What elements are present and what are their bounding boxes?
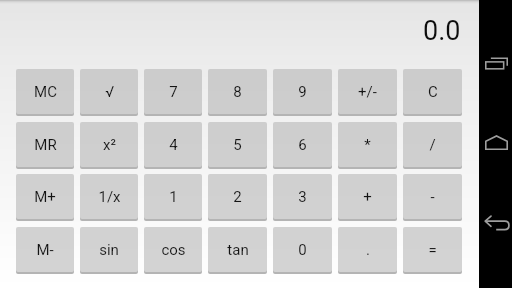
staticText: -: [430, 188, 435, 206]
staticText: 5: [233, 136, 242, 154]
button[interactable]: 8: [208, 69, 267, 114]
staticText: MR: [34, 136, 57, 154]
staticText: cos: [161, 241, 186, 259]
button[interactable]: *: [338, 122, 397, 167]
staticText: 9: [298, 83, 307, 101]
staticText: M+: [34, 188, 56, 206]
staticText: 0.0: [423, 15, 461, 47]
button[interactable]: 0: [273, 227, 332, 272]
staticText: 1: [169, 188, 178, 206]
button[interactable]: x²: [80, 122, 138, 167]
staticText: sin: [99, 241, 119, 259]
button[interactable]: +/-: [338, 69, 397, 114]
button[interactable]: 4: [144, 122, 202, 167]
button[interactable]: MC: [16, 69, 74, 114]
staticText: +: [363, 188, 372, 206]
staticText: C: [428, 83, 438, 101]
button[interactable]: +: [338, 174, 397, 219]
button[interactable]: √: [80, 69, 138, 114]
button[interactable]: =: [403, 227, 462, 272]
button[interactable]: C: [403, 69, 462, 114]
staticText: MC: [34, 83, 57, 101]
staticText: 6: [298, 136, 307, 154]
staticText: 0: [298, 241, 307, 259]
staticText: √: [105, 83, 114, 101]
staticText: =: [428, 241, 437, 259]
button[interactable]: Home: [485, 135, 508, 150]
staticText: tan: [227, 241, 249, 259]
staticText: /: [429, 136, 436, 154]
staticText: 4: [169, 136, 178, 154]
staticText: 8: [233, 83, 242, 101]
staticText: 2: [233, 188, 242, 206]
staticText: 3: [298, 188, 307, 206]
button[interactable]: 6: [273, 122, 332, 167]
button[interactable]: M+: [16, 174, 74, 219]
button[interactable]: Back: [483, 210, 511, 234]
staticText: .: [366, 241, 370, 259]
staticText: M-: [36, 241, 54, 259]
button[interactable]: cos: [144, 227, 202, 272]
button[interactable]: 3: [273, 174, 332, 219]
button[interactable]: MR: [16, 122, 74, 167]
button[interactable]: tan: [208, 227, 267, 272]
staticText: *: [364, 136, 371, 154]
button[interactable]: 9: [273, 69, 332, 114]
button[interactable]: -: [403, 174, 462, 219]
button[interactable]: 1/x: [80, 174, 138, 219]
staticText: x²: [103, 136, 116, 154]
button[interactable]: 7: [144, 69, 202, 114]
staticText: +/-: [358, 83, 377, 101]
button[interactable]: 2: [208, 174, 267, 219]
staticText: 1/x: [98, 188, 121, 206]
button[interactable]: Recents: [485, 55, 508, 70]
button[interactable]: /: [403, 122, 462, 167]
button[interactable]: 5: [208, 122, 267, 167]
staticText: 7: [169, 83, 178, 101]
button[interactable]: .: [338, 227, 397, 272]
button[interactable]: sin: [80, 227, 138, 272]
button[interactable]: 1: [144, 174, 202, 219]
button[interactable]: M-: [16, 227, 74, 272]
